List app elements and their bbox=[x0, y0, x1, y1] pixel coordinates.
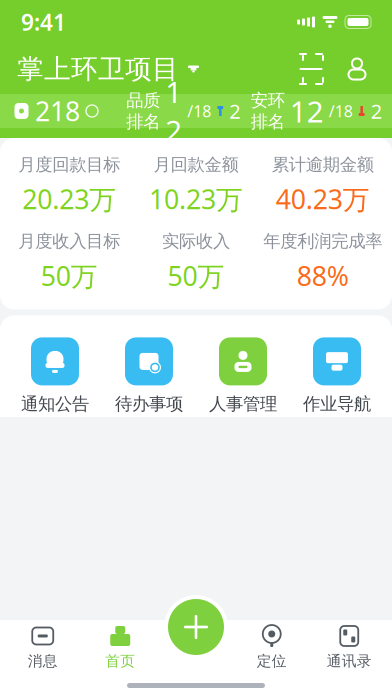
staticText: 月回款金额 bbox=[153, 154, 238, 175]
staticText: 首页 bbox=[105, 652, 135, 670]
staticText: 月度收入目标 bbox=[18, 231, 120, 252]
staticText: 40.23万 bbox=[276, 181, 370, 217]
staticText: 通知公告 bbox=[21, 393, 89, 415]
staticText: 掌上环卫项目 bbox=[17, 53, 179, 85]
staticText: 消息 bbox=[28, 652, 58, 670]
button[interactable]: 人事管理 bbox=[196, 335, 290, 417]
staticText: 12 bbox=[290, 91, 324, 130]
staticText: 实际收入 bbox=[162, 231, 230, 252]
button[interactable]: 作业导航 bbox=[290, 335, 384, 417]
button[interactable]: 消息 bbox=[4, 618, 81, 676]
staticText: 50万 bbox=[41, 258, 98, 293]
staticText: 88% bbox=[297, 258, 349, 293]
button[interactable]: 数据分析 bbox=[102, 530, 196, 611]
button[interactable]: 首页 bbox=[81, 618, 159, 676]
staticText: 年度利润完成率 bbox=[263, 231, 382, 252]
button[interactable]: 个人中心 bbox=[339, 51, 375, 87]
staticText: 月度回款目标 bbox=[18, 154, 120, 175]
button[interactable]: 通知公告 bbox=[8, 335, 102, 417]
staticText: 50万 bbox=[167, 258, 224, 293]
staticText: 作业导航 bbox=[303, 393, 371, 415]
button[interactable]: 通讯录 bbox=[310, 618, 388, 676]
button[interactable]: 考勤管理 bbox=[196, 530, 290, 611]
staticText: 通讯录 bbox=[327, 652, 372, 670]
staticText: 12 bbox=[165, 72, 182, 150]
staticText: 20.23万 bbox=[22, 181, 116, 217]
staticText: 数据分析 bbox=[115, 588, 183, 609]
staticText: 10.23万 bbox=[149, 181, 243, 217]
button[interactable]: 待办事项 bbox=[102, 335, 196, 417]
button[interactable]: 掌上环卫项目 bbox=[17, 47, 199, 91]
staticText: 218 bbox=[35, 93, 80, 129]
staticText: /18 bbox=[329, 100, 353, 122]
button[interactable]: 扫码 bbox=[293, 51, 329, 87]
staticText: 考勤管理 bbox=[209, 588, 277, 609]
staticText: 品质排名 bbox=[126, 90, 160, 132]
staticText: 人事管理 bbox=[209, 393, 277, 415]
button[interactable]: 品质排名 bbox=[112, 94, 392, 128]
staticText: 2 bbox=[229, 98, 240, 124]
button[interactable]: 新建 bbox=[163, 594, 229, 660]
staticText: 定位 bbox=[257, 652, 287, 670]
staticText: 累计逾期金额 bbox=[272, 154, 374, 175]
staticText: 9:41 bbox=[21, 7, 66, 37]
staticText: 安环排名 bbox=[251, 90, 285, 132]
button[interactable]: 定位 bbox=[233, 618, 310, 676]
staticText: /18 bbox=[187, 100, 211, 122]
staticText: 待办事项 bbox=[115, 393, 183, 415]
staticText: 2 bbox=[371, 98, 382, 124]
button[interactable]: 218 bbox=[0, 94, 112, 128]
